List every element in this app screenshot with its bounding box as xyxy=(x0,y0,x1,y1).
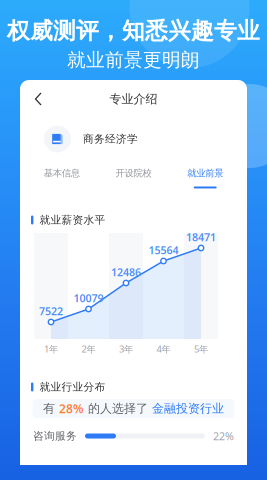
staticText: 商务经济学 xyxy=(83,132,138,145)
staticText: 就业前景更明朗 xyxy=(67,48,200,71)
button[interactable]: 开设院校 xyxy=(98,160,169,196)
staticText: 的人选择了 xyxy=(84,401,152,416)
staticText: 2年 xyxy=(81,343,95,355)
staticText: 12486 xyxy=(111,265,141,279)
staticText: 28% xyxy=(59,400,84,416)
staticText: 18471 xyxy=(186,230,216,244)
staticText: 1年 xyxy=(44,343,58,355)
staticText: 22% xyxy=(213,429,234,443)
staticText: 15564 xyxy=(148,243,178,257)
staticText: 10079 xyxy=(73,291,103,305)
button[interactable]: 基本信息 xyxy=(26,160,98,196)
staticText: 开设院校 xyxy=(115,167,151,179)
staticText: 就业行业分布 xyxy=(39,380,105,393)
staticText: 基本信息 xyxy=(44,167,80,179)
staticText: 有 xyxy=(43,401,59,416)
staticText: 就业前景 xyxy=(187,167,223,179)
button[interactable]: 返回 xyxy=(28,88,48,110)
staticText: 4年 xyxy=(156,343,170,355)
staticText: 权威测评，知悉兴趣专业 xyxy=(7,17,260,45)
staticText: 就业薪资水平 xyxy=(39,213,105,226)
staticText: 专业介绍 xyxy=(109,92,157,106)
staticText: 金融投资行业 xyxy=(152,401,224,416)
staticText: 5年 xyxy=(194,343,208,355)
button[interactable]: 就业前景 xyxy=(169,160,241,196)
staticText: 7522 xyxy=(39,304,63,318)
staticText: 3年 xyxy=(119,343,133,355)
staticText: 咨询服务 xyxy=(33,429,77,442)
